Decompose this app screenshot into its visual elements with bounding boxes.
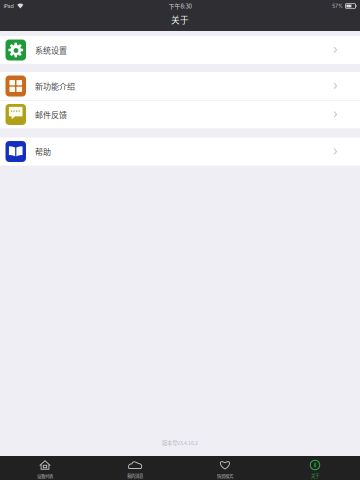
- staticText: iPad: [4, 3, 14, 9]
- staticText: 下午8:30: [168, 2, 191, 10]
- button[interactable]: 邮件反馈: [0, 100, 360, 128]
- button[interactable]: 系统设置: [0, 36, 360, 64]
- staticText: 新功能介绍: [35, 80, 75, 92]
- button[interactable]: 情景模式: [180, 456, 270, 480]
- button[interactable]: 设备列表: [0, 456, 90, 480]
- staticText: 版本号V3.4.10.2: [162, 439, 198, 446]
- staticText: 57%: [332, 3, 343, 9]
- button[interactable]: 关于: [270, 456, 360, 480]
- button[interactable]: 关于: [0, 12, 360, 31]
- staticText: 情景模式: [217, 472, 233, 479]
- button[interactable]: 帮助: [0, 137, 360, 165]
- button[interactable]: 我的消息: [90, 456, 180, 480]
- staticText: 系统设置: [35, 44, 67, 56]
- staticText: 设备列表: [37, 472, 53, 479]
- staticText: 我的消息: [127, 472, 143, 479]
- button[interactable]: 新功能介绍: [0, 72, 360, 100]
- staticText: 关于: [311, 472, 319, 479]
- staticText: 帮助: [35, 146, 51, 157]
- staticText: 关于: [171, 13, 189, 26]
- staticText: 邮件反馈: [35, 109, 67, 120]
